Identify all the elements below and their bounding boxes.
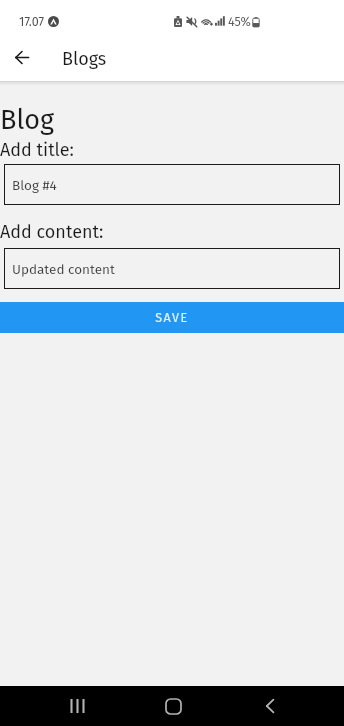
staticText: Add content: [0, 221, 104, 243]
staticText: 17.07 [19, 14, 44, 29]
staticText: Updated content [12, 261, 115, 277]
button[interactable]: SAVE [0, 302, 344, 333]
staticText: SAVE [155, 310, 189, 325]
button[interactable]: Updated content [4, 248, 340, 289]
button[interactable]: Home [151, 693, 196, 719]
staticText: Blogs [62, 48, 107, 70]
button[interactable]: Recent apps [55, 693, 99, 719]
staticText: 45% [228, 14, 251, 29]
button[interactable]: Blog #4 [4, 164, 340, 205]
button[interactable]: Back [248, 693, 292, 719]
button[interactable]: Back [5, 40, 39, 74]
staticText: Add title: [0, 139, 74, 161]
staticText: Blog [0, 104, 54, 136]
staticText: Blog #4 [12, 177, 57, 193]
